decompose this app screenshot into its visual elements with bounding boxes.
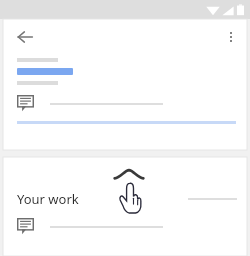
button[interactable]: More options bbox=[220, 26, 242, 48]
staticText: Your work bbox=[17, 190, 79, 208]
button[interactable]: Your work bbox=[3, 189, 247, 209]
button[interactable]: Collapse bbox=[114, 168, 144, 181]
button[interactable]: Back bbox=[12, 24, 38, 50]
